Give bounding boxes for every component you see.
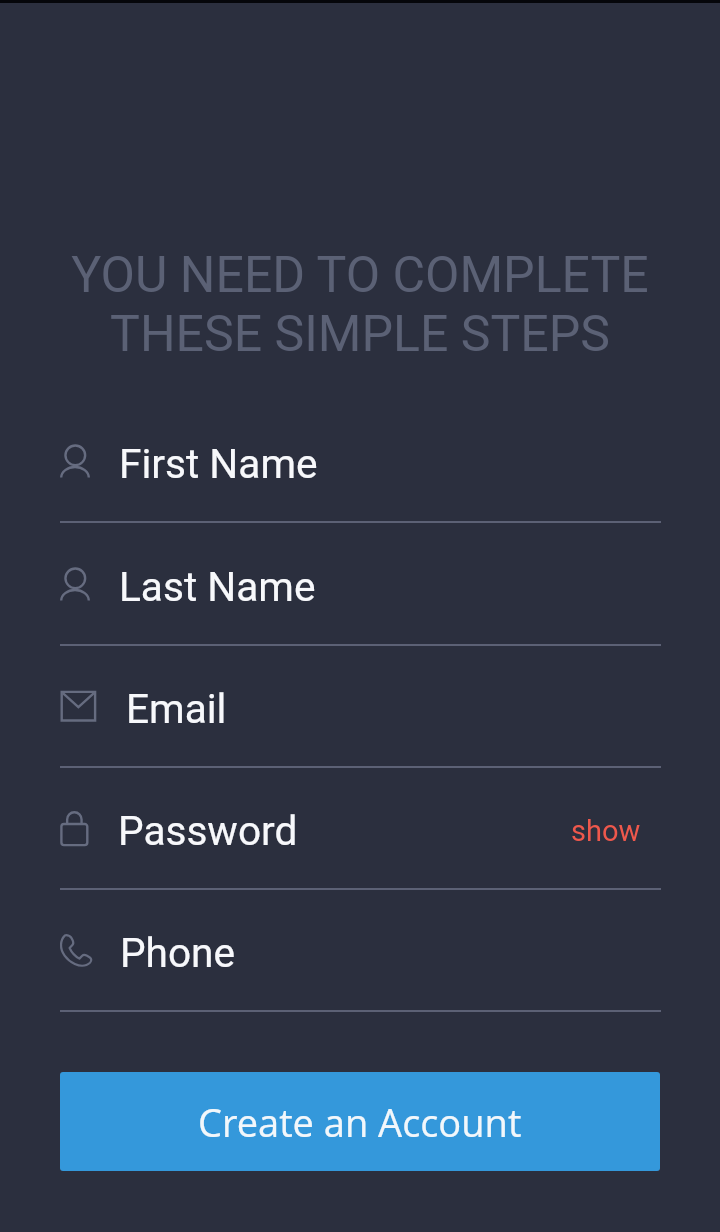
staticText: Password [118,807,298,855]
staticText: show [571,814,641,848]
button[interactable]: Lock [0,767,720,889]
staticText: Phone [120,929,236,977]
other: Email [58,685,98,725]
button[interactable]: Person [0,523,720,645]
button[interactable]: Phone [0,889,720,1011]
staticText: Last Name [119,563,316,611]
staticText: THESE SIMPLE STEPS [110,305,610,364]
button[interactable]: Person [0,400,720,522]
staticText: Email [126,685,227,733]
staticText: Create an Account [198,1096,522,1148]
other: Phone [58,929,98,969]
button[interactable]: show [571,808,672,853]
button[interactable]: Create an Account [60,1072,660,1171]
other: Person [58,440,98,480]
button[interactable]: Email [0,645,720,767]
staticText: YOU NEED TO COMPLETE [71,246,649,305]
staticText: First Name [119,440,318,488]
other: Person [58,563,98,603]
other: Lock [58,807,98,847]
